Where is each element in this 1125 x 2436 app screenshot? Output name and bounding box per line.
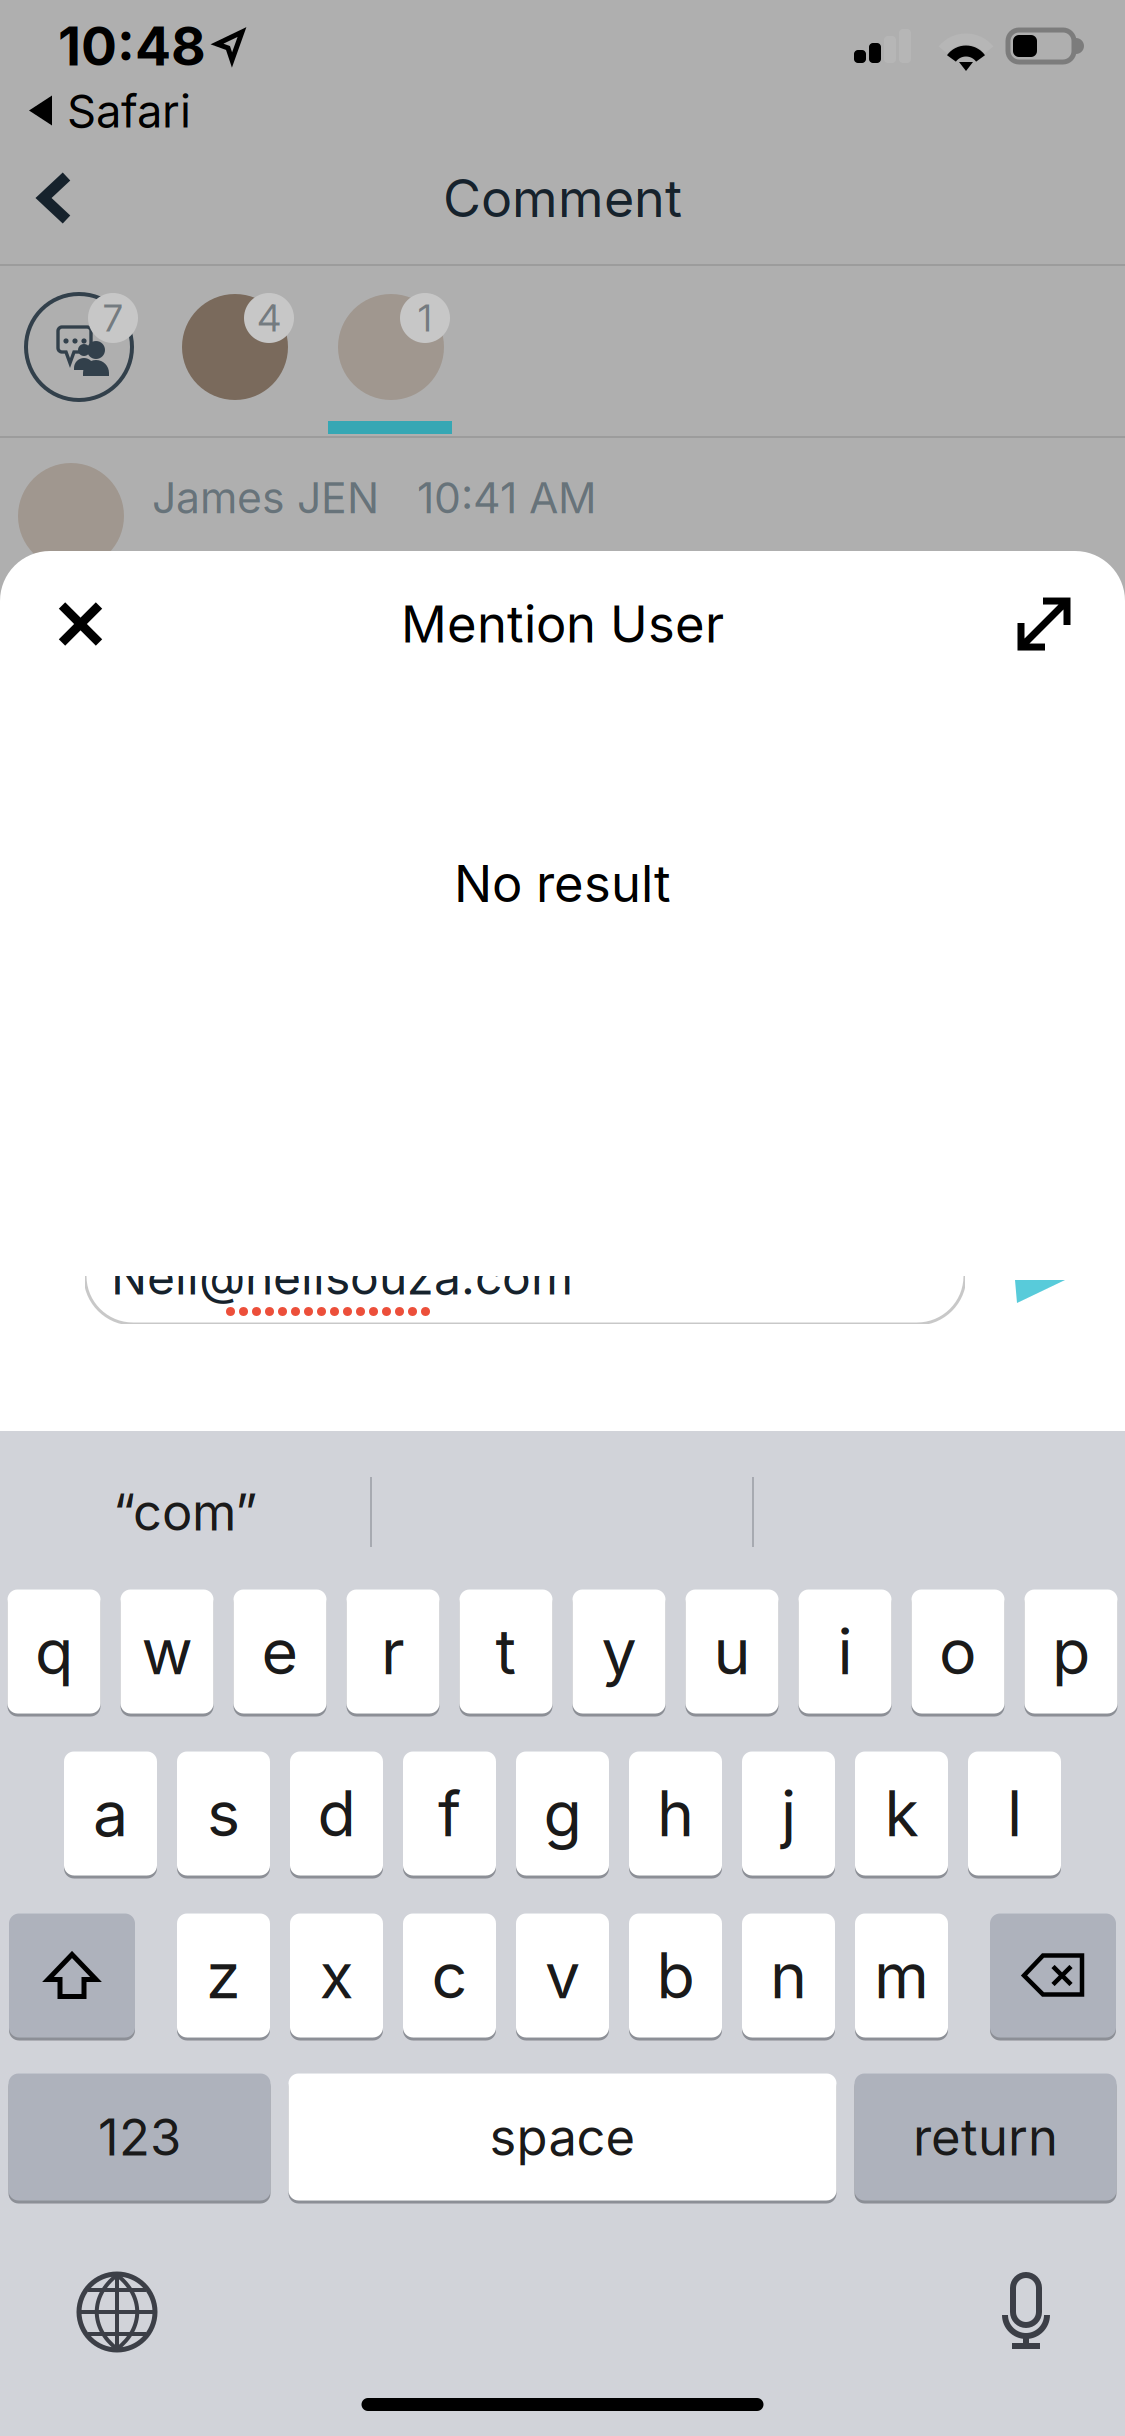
button[interactable]: g [516,1750,609,1877]
staticText: No result [454,853,671,914]
button[interactable]: space [288,2072,836,2202]
button[interactable]: Back [12,148,98,248]
staticText: James JEN [152,472,379,524]
button[interactable]: x [290,1912,383,2039]
staticText: t [495,1614,516,1689]
button[interactable]: c [403,1912,496,2039]
staticText: 10:48 [58,14,206,78]
button[interactable]: h [629,1750,722,1877]
button[interactable]: Delete [990,1912,1116,2039]
staticText: 123 [98,2106,181,2168]
button[interactable]: Expand [988,576,1100,672]
staticText: space [489,2106,635,2168]
button[interactable]: d [290,1750,383,1877]
staticText: z [206,1938,241,2013]
button[interactable]: l [968,1750,1061,1877]
button[interactable]: Dictation [1004,2272,1048,2350]
staticText: q [35,1614,73,1689]
button[interactable]: b [629,1912,722,2039]
button[interactable]: z [177,1912,270,2039]
staticText: 1 [418,295,432,341]
staticText: l [1007,1776,1022,1851]
staticText: e [261,1614,298,1689]
button[interactable]: v [516,1912,609,2039]
staticText: j [781,1776,796,1851]
staticText: “com” [113,1481,257,1543]
staticText: u [713,1614,750,1689]
staticText: y [601,1614,636,1689]
button[interactable]: 123 [8,2072,270,2202]
staticText: v [545,1938,580,2013]
staticText: 4 [257,295,280,341]
button[interactable]: Next keyboard [77,2272,157,2352]
staticText: n [770,1938,807,2013]
button[interactable]: Shift [9,1912,135,2039]
button[interactable]: y [572,1588,665,1715]
button[interactable]: All comments [26,294,160,400]
button[interactable]: a [64,1750,157,1877]
button[interactable]: f [403,1750,496,1877]
button[interactable]: Comments by James JEN [338,294,472,400]
staticText: d [317,1776,355,1851]
staticText: g [543,1776,581,1851]
staticText: 7 [103,295,123,341]
button[interactable]: o [911,1588,1004,1715]
button[interactable]: j [742,1750,835,1877]
button[interactable]: m [855,1912,948,2039]
staticText: k [884,1776,918,1851]
staticText: return [913,2106,1058,2168]
button[interactable]: q [7,1588,100,1715]
button[interactable]: p [1024,1588,1117,1715]
staticText: p [1052,1614,1090,1689]
button[interactable]: u [685,1588,778,1715]
staticText: Safari [67,84,191,138]
staticText: f [438,1776,461,1851]
staticText: a [93,1776,128,1851]
staticText: i [837,1614,852,1689]
staticText: s [207,1776,240,1851]
button[interactable]: i [798,1588,891,1715]
button[interactable]: Close [25,575,136,672]
button[interactable]: return [854,2072,1116,2202]
button[interactable]: s [177,1750,270,1877]
staticText: r [381,1614,405,1689]
button[interactable]: k [855,1750,948,1877]
staticText: w [141,1614,192,1689]
button[interactable]: n [742,1912,835,2039]
staticText: Mention User [401,593,724,655]
button[interactable]: w [120,1588,213,1715]
staticText: c [431,1938,467,2013]
staticText: b [656,1938,694,2013]
staticText: Comment [443,166,682,229]
staticText: 10:41 AM [417,472,597,524]
button[interactable]: t [459,1588,552,1715]
button[interactable]: r [346,1588,439,1715]
staticText: Neil@neilsouza.com [111,1248,573,1306]
staticText: h [657,1776,694,1851]
staticText: x [319,1938,353,2013]
staticText: o [939,1614,977,1689]
staticText: m [874,1938,929,2013]
button[interactable]: Comments by user [182,294,316,400]
button[interactable]: e [233,1588,326,1715]
